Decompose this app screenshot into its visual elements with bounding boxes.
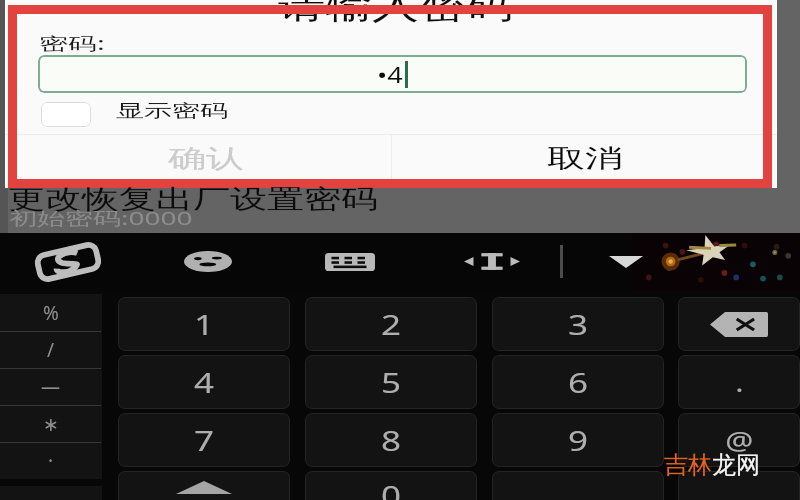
staticText: 4 [194,363,215,401]
staticText: — [41,374,61,400]
button[interactable]: 6 [492,355,664,409]
staticText: 取消 [547,143,623,175]
button[interactable]: · [0,442,102,479]
button[interactable]: 9 [492,413,664,467]
staticText: 显示密码 [116,100,228,122]
staticText: 6 [568,363,589,401]
button[interactable]: Sogou input method [0,233,136,290]
button[interactable]: Hide keyboard [571,233,681,290]
button[interactable]: / [0,331,102,368]
button[interactable]: 8 [305,413,477,467]
staticText: 1 [194,305,215,343]
staticText: 3 [568,305,589,343]
staticText: 2 [381,305,402,343]
staticText: 5 [381,363,402,401]
staticText: 更改恢复出厂设置密码 [8,183,378,216]
staticText: 确认 [168,143,244,175]
button[interactable]: Enter [678,471,800,500]
button[interactable]: 显示密码 [41,102,91,127]
staticText: •4 [377,60,403,89]
button[interactable]: •4 [38,55,747,93]
button[interactable]: Emoji [150,233,266,290]
staticText: 密码: [39,31,105,55]
staticText: ∗ [43,413,59,435]
button[interactable]: 0 [305,471,477,500]
staticText: @ [725,423,754,457]
button[interactable]: 7 [118,413,290,467]
staticText: . [735,365,744,399]
button[interactable]: 2 [305,297,477,351]
button[interactable]: 1 [118,297,290,351]
button[interactable]: Backspace [678,297,800,351]
staticText: 初始密码:0000 [9,205,193,230]
staticText: 龙网 [712,450,760,480]
button[interactable]: 3 [492,297,664,351]
staticText: / [47,337,55,363]
button[interactable]: % [0,294,102,331]
staticText: 8 [381,421,402,459]
button[interactable]: Switch keyboard [290,233,410,290]
button[interactable]: @ [678,413,800,467]
staticText: 请输入密码 [278,0,513,28]
staticText: 吉林 [664,450,712,480]
button[interactable]: 4 [118,355,290,409]
staticText: 9 [568,421,589,459]
button[interactable] [392,135,777,188]
staticText: · [48,448,54,474]
button[interactable]: Move cursor [432,233,552,290]
button[interactable]: Space [492,471,664,500]
button[interactable]: 5 [305,355,477,409]
button[interactable]: — [0,368,102,405]
staticText: % [43,300,59,326]
staticText: 0 [381,476,402,500]
button[interactable]: . [678,355,800,409]
staticText: 7 [194,421,215,459]
button[interactable] [5,135,391,188]
button[interactable]: ∗ [0,405,102,442]
button[interactable]: Shift [118,471,290,500]
